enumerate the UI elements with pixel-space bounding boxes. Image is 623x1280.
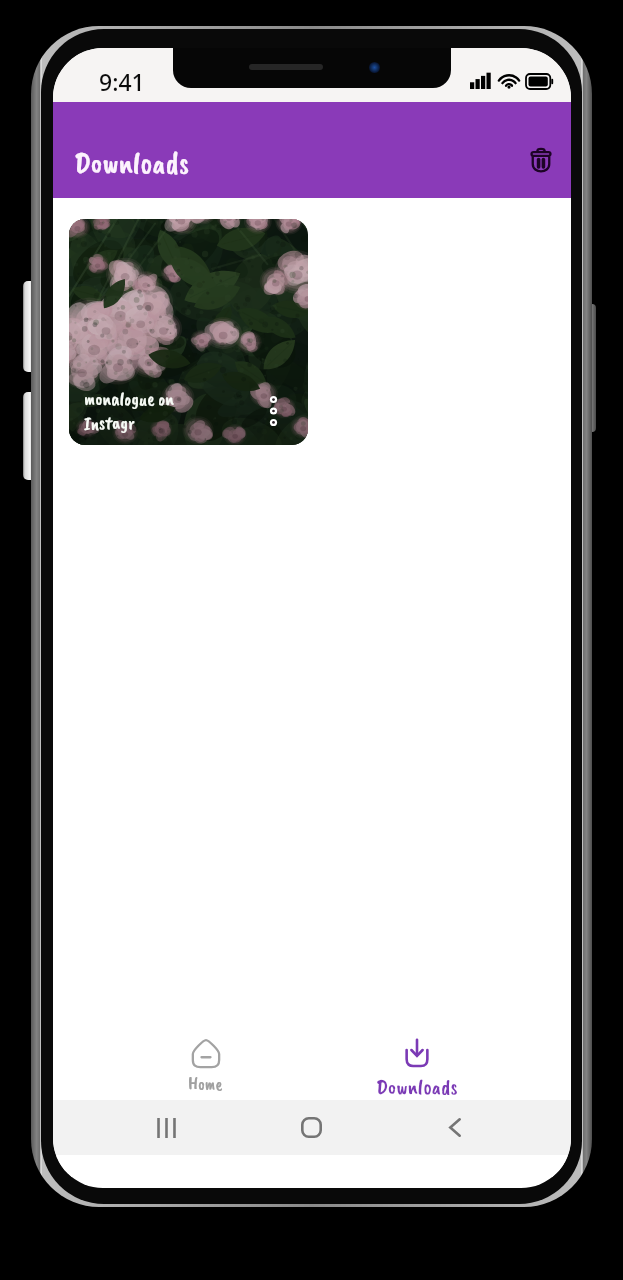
button[interactable]: Back	[426, 1100, 484, 1155]
button[interactable]: Recent apps	[137, 1100, 195, 1155]
button[interactable]: More options	[262, 394, 284, 428]
staticText: Downloads	[376, 1073, 458, 1095]
button[interactable]: monalogue on	[69, 219, 308, 445]
button[interactable]: Home	[282, 1100, 340, 1155]
staticText: monalogue on	[84, 387, 174, 411]
staticText: Instagr	[84, 411, 135, 435]
button[interactable]: Downloads	[353, 1039, 481, 1095]
staticText: Downloads	[74, 143, 190, 182]
staticText: 9:41	[99, 66, 145, 97]
button[interactable]: Home	[141, 1039, 269, 1095]
staticText: Home	[188, 1073, 223, 1095]
button[interactable]: Delete all downloads	[519, 139, 563, 183]
